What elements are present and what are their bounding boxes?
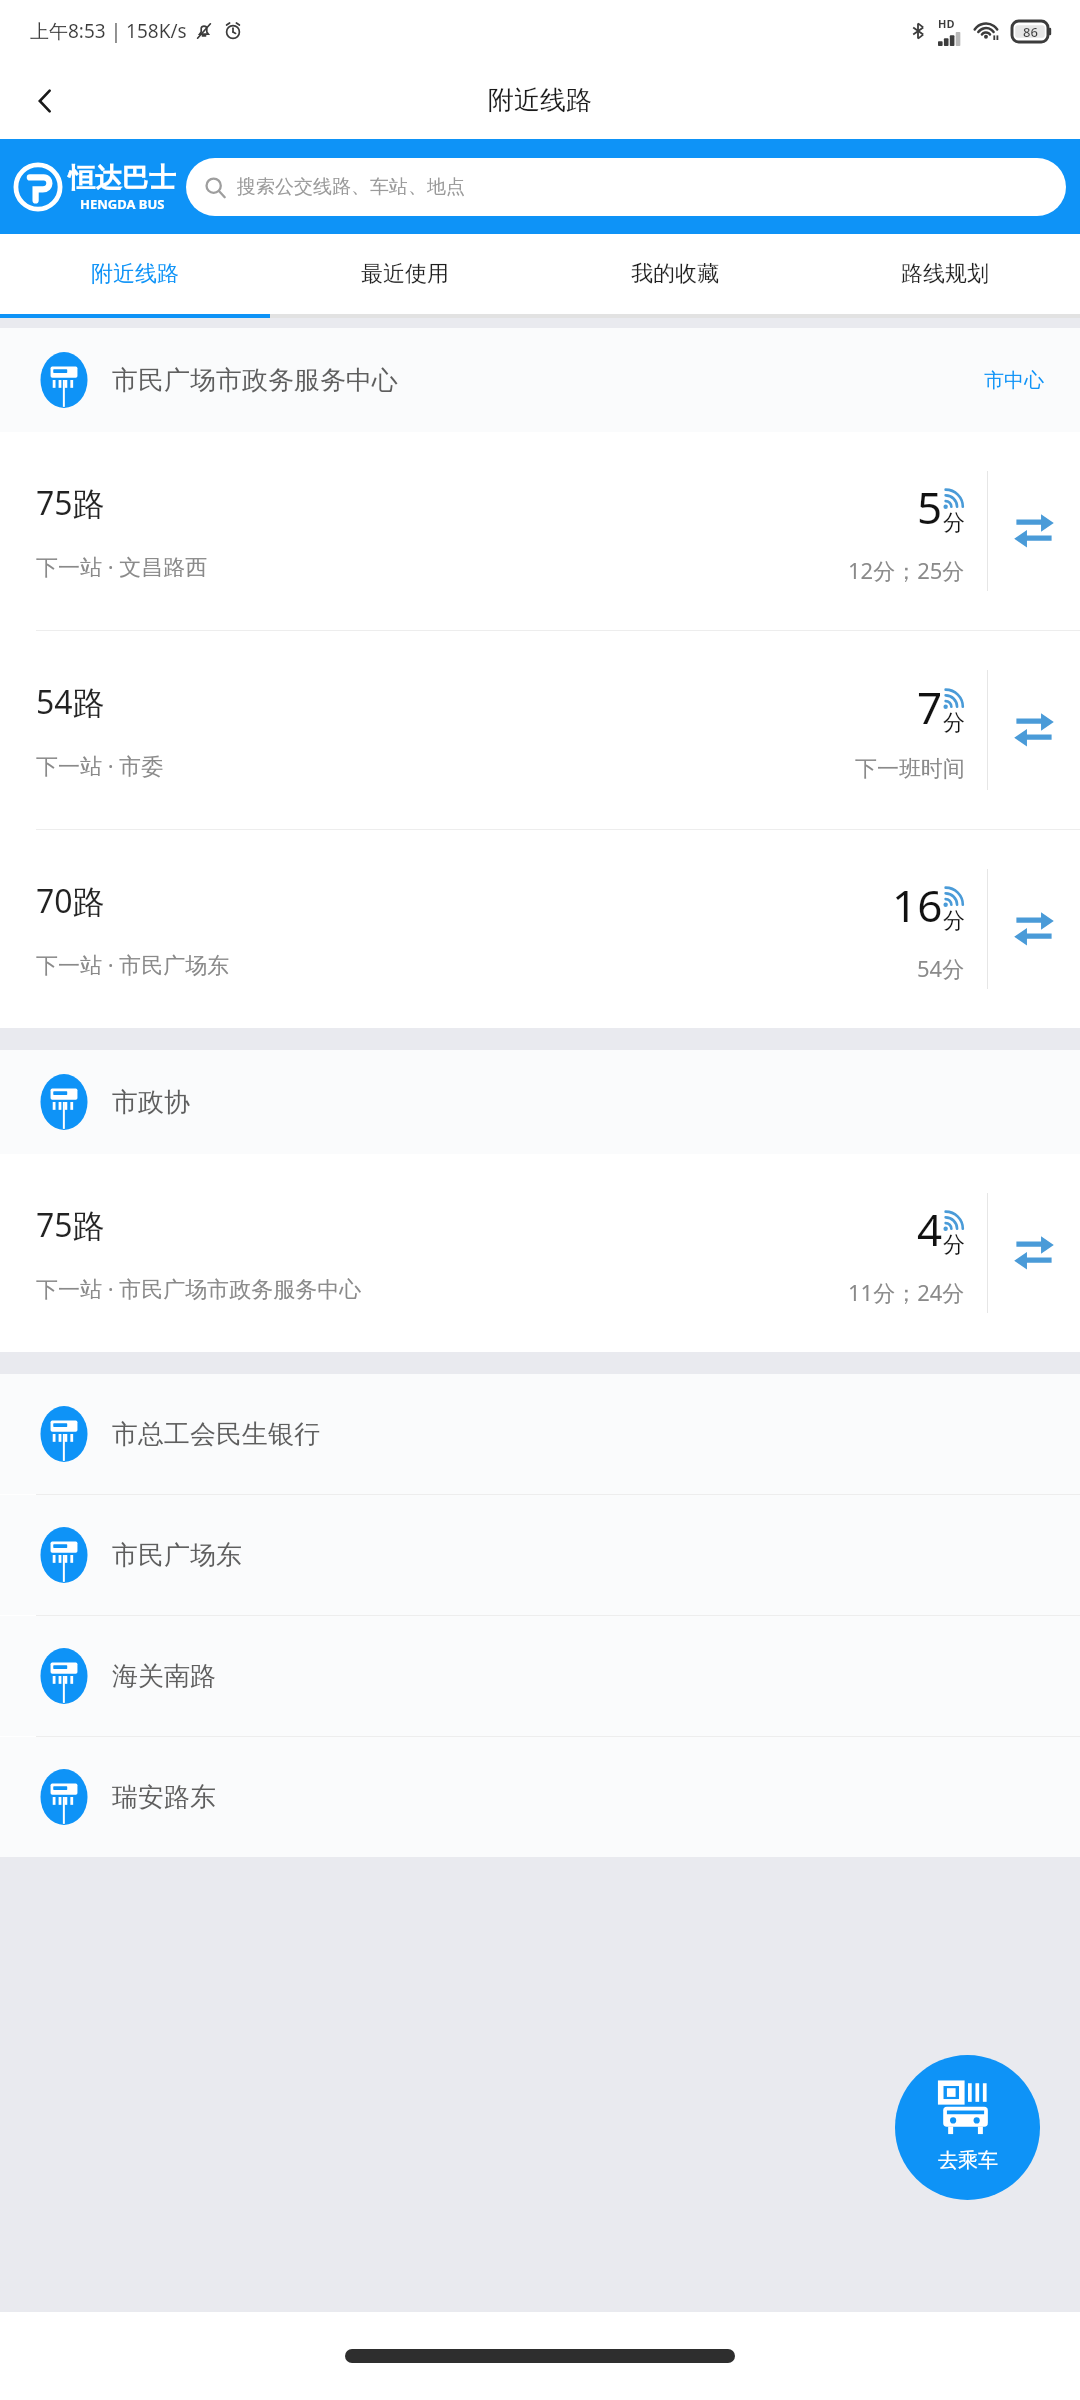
- staticText: 附近线路: [488, 84, 592, 117]
- staticText: HENGDA BUS: [80, 195, 165, 213]
- staticText: 4: [917, 1199, 943, 1259]
- button[interactable]: 市总工会民生银行: [0, 1374, 1080, 1494]
- staticText: 下一班时间: [855, 755, 965, 783]
- button[interactable]: 75路: [0, 1154, 1080, 1352]
- staticText: 分: [943, 709, 965, 737]
- staticText: 我的收藏: [631, 260, 719, 288]
- staticText: 市民广场市政务服务中心: [112, 364, 398, 397]
- staticText: 54分: [917, 953, 965, 983]
- staticText: 下一站 · 市民广场市政务服务中心: [36, 1273, 362, 1303]
- button[interactable]: 54路: [0, 631, 1080, 829]
- button[interactable]: 返回: [14, 70, 76, 132]
- staticText: 最近使用: [361, 260, 449, 288]
- staticText: 下一站 · 文昌路西: [36, 551, 208, 581]
- staticText: 分: [943, 907, 965, 935]
- button[interactable]: 我的收藏: [540, 234, 810, 314]
- button[interactable]: 切换方向: [988, 1154, 1080, 1352]
- staticText: HD: [938, 16, 955, 31]
- staticText: 70路: [36, 879, 105, 923]
- staticText: 86: [1023, 23, 1038, 41]
- staticText: 海关南路: [112, 1660, 216, 1693]
- button[interactable]: 海关南路: [0, 1616, 1080, 1736]
- button[interactable]: 路线规划: [810, 234, 1080, 314]
- staticText: 市政协: [112, 1086, 190, 1119]
- button[interactable]: 去乘车: [895, 2055, 1040, 2200]
- button[interactable]: 切换方向: [988, 830, 1080, 1028]
- staticText: 下一站 · 市委: [36, 750, 164, 780]
- staticText: 5: [917, 477, 943, 537]
- button[interactable]: 附近线路: [0, 234, 270, 314]
- staticText: 分: [943, 1231, 965, 1259]
- staticText: 去乘车: [938, 2148, 998, 2173]
- staticText: 54路: [36, 680, 105, 724]
- staticText: 16: [892, 875, 943, 935]
- staticText: 7: [917, 677, 943, 737]
- staticText: 12分；25分: [848, 555, 965, 585]
- button[interactable]: 75路: [0, 432, 1080, 630]
- staticText: 恒达巴士: [68, 161, 176, 195]
- staticText: 搜索公交线路、车站、地点: [237, 175, 465, 199]
- button[interactable]: 搜索公交线路、车站、地点: [186, 158, 1066, 216]
- button[interactable]: 市民广场东: [0, 1495, 1080, 1615]
- staticText: 下一站 · 市民广场东: [36, 949, 230, 979]
- staticText: 路线规划: [901, 260, 989, 288]
- staticText: 市中心: [984, 368, 1044, 393]
- staticText: 瑞安路东: [112, 1781, 216, 1814]
- staticText: 75路: [36, 1203, 105, 1247]
- button[interactable]: 市政协: [0, 1050, 1080, 1154]
- staticText: 市民广场东: [112, 1539, 242, 1572]
- button[interactable]: 切换方向: [988, 631, 1080, 829]
- button[interactable]: 切换方向: [988, 432, 1080, 630]
- button[interactable]: 最近使用: [270, 234, 540, 314]
- staticText: 分: [943, 509, 965, 537]
- staticText: 11分；24分: [848, 1277, 965, 1307]
- staticText: 市总工会民生银行: [112, 1418, 320, 1451]
- staticText: 上午8:53 | 158K/s: [30, 18, 187, 44]
- button[interactable]: 70路: [0, 830, 1080, 1028]
- button[interactable]: 市民广场市政务服务中心: [0, 328, 1080, 432]
- staticText: 附近线路: [91, 260, 179, 288]
- staticText: 75路: [36, 481, 105, 525]
- button[interactable]: 瑞安路东: [0, 1737, 1080, 1857]
